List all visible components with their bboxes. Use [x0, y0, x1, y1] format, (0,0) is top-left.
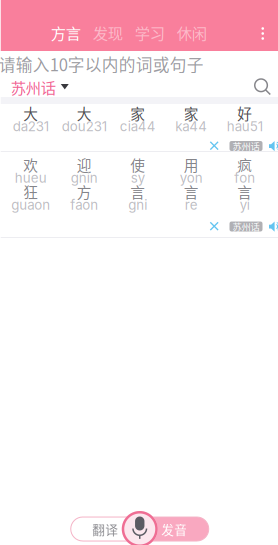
button[interactable]: 发音 [140, 517, 209, 541]
staticText: hueu [15, 170, 47, 186]
staticText: 大 [77, 102, 92, 124]
button[interactable]: 翻译 [71, 517, 140, 541]
staticText: 苏州话 [232, 139, 259, 153]
staticText: gnin [71, 170, 98, 186]
staticText: 言 [130, 181, 145, 202]
staticText: 方言 [51, 21, 81, 44]
staticText: 学习 [135, 21, 165, 44]
staticText: cia44 [120, 118, 156, 134]
staticText: 言 [237, 181, 252, 202]
button[interactable]: Voice input [120, 509, 160, 545]
button[interactable]: Remove result [205, 139, 223, 152]
staticText: 欢 [23, 154, 38, 175]
button[interactable]: 苏州话 [229, 221, 262, 231]
button[interactable]: 方言 [53, 20, 79, 44]
staticText: 狂 [23, 181, 38, 202]
staticText: 家 [130, 102, 145, 124]
button[interactable]: Remove result [205, 220, 223, 233]
staticText: 迎 [77, 154, 92, 175]
button[interactable]: 苏州话 [1, 77, 75, 97]
staticText: faon [70, 197, 98, 213]
button[interactable]: 发现 [95, 20, 121, 44]
staticText: 疯 [237, 154, 252, 175]
staticText: 家 [184, 102, 199, 124]
staticText: yon [180, 170, 203, 186]
staticText: 苏州话 [11, 76, 56, 98]
staticText: hau51 [227, 118, 263, 134]
staticText: 苏州话 [232, 220, 259, 233]
staticText: 大 [23, 102, 38, 124]
staticText: fon [234, 170, 255, 186]
button[interactable]: Play pronunciation [268, 139, 278, 152]
staticText: ka44 [175, 118, 207, 134]
staticText: 好 [237, 102, 252, 124]
staticText: 使 [130, 154, 145, 175]
staticText: guaon [11, 197, 50, 213]
staticText: re [185, 197, 198, 213]
staticText: 用 [184, 154, 199, 175]
button[interactable]: Search [249, 77, 277, 97]
staticText: 发现 [93, 21, 123, 44]
button[interactable]: 休闲 [179, 20, 205, 44]
staticText: 请输入10字以内的词或句子 [0, 52, 204, 76]
button[interactable]: More options [252, 20, 274, 46]
staticText: 发音 [161, 520, 187, 538]
button[interactable]: 学习 [137, 20, 163, 44]
staticText: 言 [184, 181, 199, 202]
staticText: 方 [77, 181, 92, 202]
staticText: 翻译 [92, 520, 118, 538]
staticText: 休闲 [177, 21, 207, 44]
staticText: gni [128, 197, 147, 213]
button[interactable]: 苏州话 [229, 141, 262, 151]
staticText: dou231 [62, 118, 107, 134]
staticText: yi [240, 197, 250, 213]
staticText: da231 [13, 118, 49, 134]
button[interactable]: Play pronunciation [268, 220, 278, 233]
staticText: sy [131, 170, 145, 186]
